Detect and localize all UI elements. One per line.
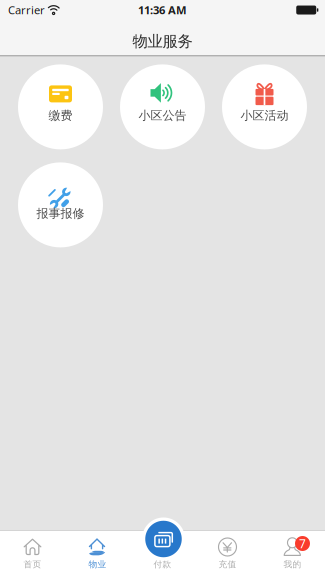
button[interactable]: 报事报修 (18, 162, 103, 247)
staticText: 11:36 AM (138, 2, 187, 18)
button[interactable]: 充值 (195, 530, 260, 575)
button[interactable]: 7 (260, 530, 325, 575)
button[interactable]: 首页 (0, 530, 65, 575)
staticText: 7 (299, 535, 306, 552)
staticText: 小区公告 (138, 108, 186, 123)
staticText: 小区活动 (240, 108, 288, 123)
staticText: 缴费 (48, 108, 72, 123)
button[interactable]: 付款 (130, 530, 195, 575)
button[interactable]: 缴费 (18, 64, 103, 149)
staticText: 充值 (218, 559, 236, 570)
button[interactable]: 付款 (142, 517, 185, 560)
staticText: 物业 (88, 559, 106, 570)
staticText: Carrier (8, 2, 45, 18)
staticText: 付款 (153, 559, 171, 570)
button[interactable]: 物业 (65, 530, 130, 575)
staticText: 我的 (283, 559, 301, 570)
staticText: 物业服务 (132, 32, 192, 51)
staticText: 首页 (23, 559, 41, 570)
staticText: 报事报修 (36, 206, 84, 221)
button[interactable]: 小区活动 (222, 64, 307, 149)
button[interactable]: 小区公告 (120, 64, 205, 149)
